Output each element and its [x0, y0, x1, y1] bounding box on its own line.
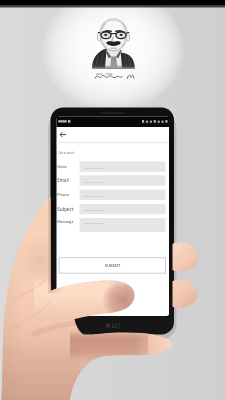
button[interactable]: [57, 162, 166, 172]
button[interactable]: [57, 204, 166, 214]
button[interactable]: [57, 218, 166, 232]
button[interactable]: [57, 175, 166, 185]
button[interactable]: [59, 258, 166, 274]
button[interactable]: [57, 190, 166, 200]
button[interactable]: Back: [58, 128, 70, 141]
